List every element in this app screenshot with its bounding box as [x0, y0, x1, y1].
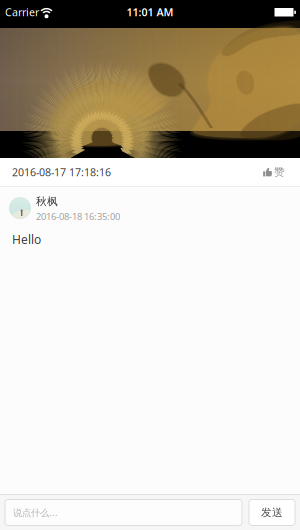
- staticText: 11:01 AM: [126, 5, 173, 19]
- staticText: 发送: [261, 506, 283, 519]
- button[interactable]: 发送: [249, 499, 295, 525]
- staticText: Hello: [12, 231, 41, 247]
- staticText: Carrier: [5, 5, 39, 19]
- button[interactable]: 赞: [260, 161, 288, 182]
- staticText: 2016-08-17 17:18:16: [12, 165, 111, 179]
- staticText: 说点什么...: [13, 506, 58, 519]
- button[interactable]: 说点什么...: [5, 499, 242, 525]
- staticText: 2016-08-18 16:35:00: [36, 210, 120, 222]
- staticText: 秋枫: [36, 195, 58, 208]
- staticText: 赞: [274, 165, 285, 178]
